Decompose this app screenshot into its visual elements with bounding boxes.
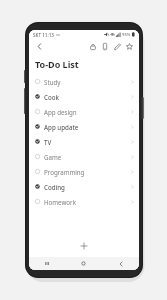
- button[interactable]: App update: [29, 119, 139, 134]
- staticText: Study: [44, 78, 131, 86]
- staticText: 95%: [122, 32, 131, 38]
- button[interactable]: Coding: [29, 179, 139, 194]
- staticText: Programming: [44, 168, 131, 176]
- button[interactable]: Homework: [29, 194, 139, 209]
- button[interactable]: TV: [29, 134, 139, 149]
- button[interactable]: Back: [33, 40, 45, 52]
- staticText: Cook: [44, 93, 131, 101]
- button[interactable]: Devices: [99, 40, 111, 52]
- staticText: TV: [44, 138, 131, 146]
- button[interactable]: Home: [65, 257, 102, 270]
- staticText: Homework: [44, 198, 131, 206]
- staticText: To-Do List: [35, 58, 79, 70]
- staticText: Game: [44, 153, 131, 161]
- button[interactable]: Study: [29, 74, 139, 89]
- button[interactable]: Game: [29, 149, 139, 164]
- button[interactable]: Back: [102, 257, 139, 270]
- button[interactable]: Edit: [111, 40, 123, 52]
- button[interactable]: Lock: [87, 40, 99, 52]
- staticText: Coding: [44, 183, 131, 191]
- button[interactable]: Programming: [29, 164, 139, 179]
- button[interactable]: Favourite: [123, 40, 135, 52]
- button[interactable]: Cook: [29, 89, 139, 104]
- staticText: App design: [44, 108, 131, 116]
- button[interactable]: Recents: [29, 257, 65, 270]
- button[interactable]: Add task: [76, 238, 92, 254]
- staticText: SKT 11:13: [33, 32, 54, 38]
- button[interactable]: App design: [29, 104, 139, 119]
- staticText: App update: [44, 123, 131, 131]
